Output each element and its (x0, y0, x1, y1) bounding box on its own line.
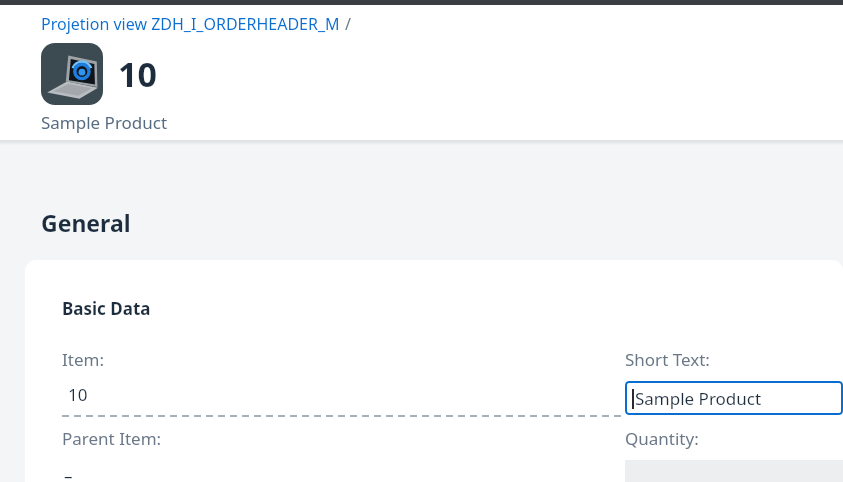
staticText: Projetion view ZDH_I_ORDERHEADER_M (41, 13, 340, 35)
staticText: 10 (118, 51, 157, 97)
button[interactable]: Sample Product (625, 381, 843, 415)
staticText: General (41, 207, 131, 238)
button[interactable]: Product image (41, 43, 103, 105)
staticText: 10 (68, 383, 88, 406)
staticText: Sample Product (635, 387, 762, 410)
staticText: Short Text: (625, 348, 710, 371)
staticText: Quantity: (625, 427, 699, 450)
staticText: Sample Product (41, 111, 168, 134)
staticText: Item: (62, 348, 104, 371)
staticText: Parent Item: (62, 427, 162, 450)
staticText: / (345, 13, 351, 35)
staticText: Basic Data (62, 297, 151, 320)
button[interactable]: Projetion view ZDH_I_ORDERHEADER_M (41, 13, 340, 35)
staticText: – (64, 464, 73, 482)
